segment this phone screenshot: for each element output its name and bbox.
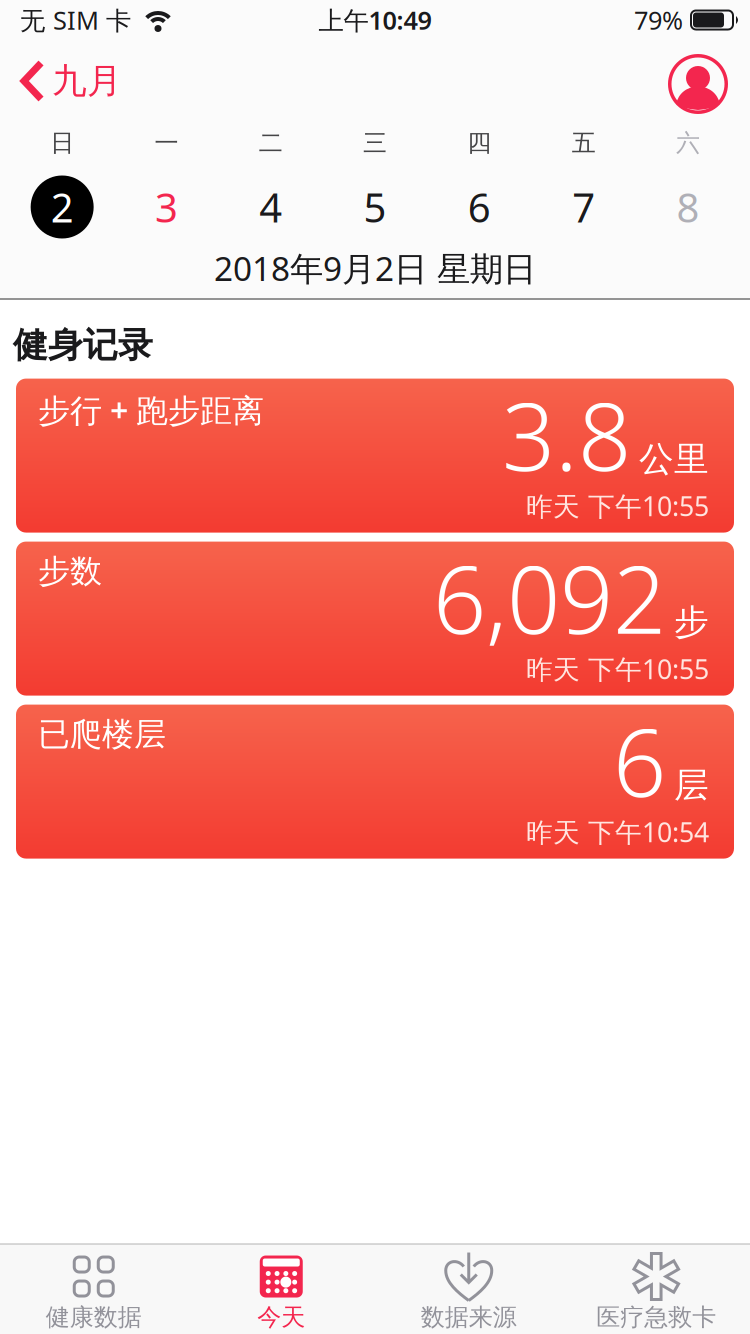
staticText: 2 [51, 180, 74, 233]
staticText: 今天 [257, 1302, 305, 1332]
staticText: 数据来源 [421, 1302, 517, 1332]
staticText: 一 [154, 128, 178, 158]
button[interactable]: 健康数据 [0, 1256, 187, 1332]
button[interactable]: 2 [10, 175, 114, 238]
button[interactable] [668, 51, 750, 111]
staticText: 五 [572, 128, 596, 158]
staticText: 步行 + 跑步距离 [38, 389, 264, 431]
button[interactable]: 数据来源 [375, 1256, 562, 1332]
staticText: 步数 [38, 552, 102, 591]
staticText: 二 [259, 128, 283, 158]
button[interactable]: 今天 [187, 1256, 375, 1332]
staticText: 3 [155, 180, 178, 233]
staticText: 昨天 下午10:55 [526, 651, 709, 687]
staticText: 四 [467, 128, 491, 158]
button[interactable]: 6 [427, 180, 531, 233]
staticText: 医疗急救卡 [596, 1302, 716, 1332]
staticText: 日 [50, 128, 74, 158]
staticText: 已爬楼层 [38, 715, 166, 754]
staticText: 三 [363, 128, 387, 158]
button[interactable]: 2018年9月2日 星期日 [0, 250, 750, 286]
staticText: 79% [634, 3, 683, 37]
staticText: 7 [572, 180, 595, 233]
staticText: 六 [676, 128, 700, 158]
button[interactable]: 步行 + 跑步距离 [16, 379, 734, 533]
staticText: 6,092 [433, 536, 666, 659]
staticText: 步 [674, 601, 709, 643]
staticText: 上午10:49 [318, 3, 431, 37]
staticText: 3.8 [502, 373, 631, 496]
button[interactable]: 步数 [16, 542, 734, 696]
button[interactable]: 已爬楼层 [16, 705, 734, 859]
staticText: 层 [674, 764, 709, 806]
staticText: 无 SIM 卡 [20, 3, 131, 37]
staticText: 公里 [639, 438, 709, 480]
staticText: 昨天 下午10:55 [526, 488, 709, 524]
button[interactable]: 4 [219, 180, 323, 233]
staticText: 2018年9月2日 星期日 [214, 246, 536, 290]
staticText: 8 [676, 180, 699, 233]
staticText: 5 [363, 180, 386, 233]
button[interactable]: 医疗急救卡 [562, 1256, 750, 1332]
button[interactable]: 3 [114, 180, 219, 233]
staticText: 健身记录 [13, 324, 153, 367]
staticText: 6 [468, 180, 491, 233]
staticText: 昨天 下午10:54 [526, 814, 709, 850]
staticText: 健康数据 [46, 1302, 142, 1332]
staticText: 6 [613, 699, 666, 822]
button[interactable]: 5 [323, 180, 427, 233]
staticText: 4 [259, 180, 282, 233]
button[interactable]: 九月 [0, 60, 122, 102]
button[interactable]: 8 [636, 180, 740, 233]
staticText: 九月 [52, 60, 122, 102]
button[interactable]: 7 [531, 180, 636, 233]
